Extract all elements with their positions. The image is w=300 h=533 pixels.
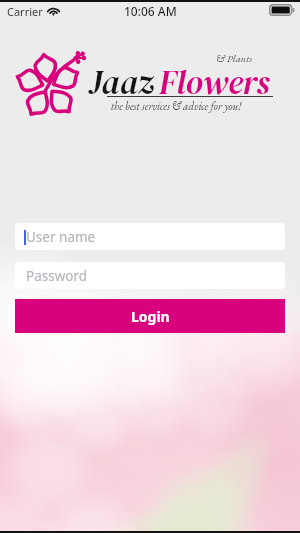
- staticText: Jaaz: [89, 60, 155, 105]
- button[interactable]: User name: [15, 223, 285, 250]
- staticText: Flowers: [159, 60, 270, 105]
- staticText: the best services & advice for you!: [111, 99, 242, 113]
- staticText: & Plants: [216, 51, 253, 65]
- staticText: 10:06 AM: [124, 3, 177, 19]
- staticText: Password: [26, 267, 88, 285]
- staticText: User name: [26, 228, 96, 246]
- button[interactable]: Password: [15, 262, 285, 289]
- button[interactable]: Login: [15, 299, 285, 333]
- staticText: Carrier: [7, 4, 43, 19]
- staticText: Login: [131, 307, 170, 326]
